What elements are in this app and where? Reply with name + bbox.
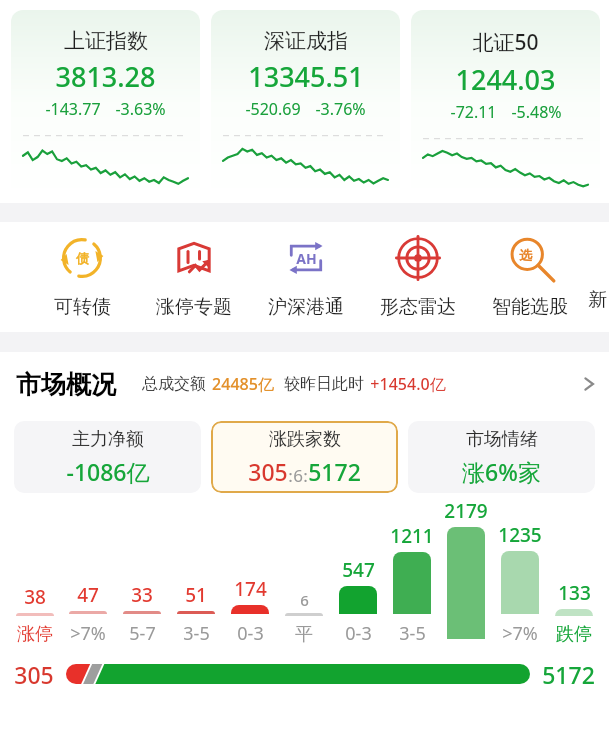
button[interactable]: 174	[223, 576, 277, 646]
staticText: 13345.51	[248, 58, 364, 95]
staticText: 债	[76, 250, 89, 266]
staticText: 跌停	[556, 623, 592, 646]
button[interactable]: 47	[61, 582, 115, 646]
staticText: -1086亿	[66, 456, 150, 487]
staticText: 北证50	[472, 28, 539, 57]
other: 可转债	[59, 235, 105, 281]
staticText: 33	[131, 582, 153, 608]
button[interactable]: 6	[277, 590, 331, 646]
staticText: 3813.28	[55, 58, 156, 95]
staticText: 47	[77, 582, 99, 608]
staticText: 市场情绪	[466, 428, 538, 451]
staticText: -3.63%	[115, 98, 166, 120]
staticText: -143.77	[45, 98, 101, 120]
other: 智能选股	[507, 235, 553, 281]
staticText: 547	[342, 557, 375, 583]
button[interactable]: 可转债	[26, 235, 138, 319]
button[interactable]: 上证指数	[11, 10, 200, 200]
other: 涨停专题	[171, 235, 217, 281]
button[interactable]: 51	[169, 582, 223, 646]
staticText: 5172	[308, 456, 361, 487]
staticText: :	[288, 464, 293, 487]
staticText: 可转债	[54, 295, 111, 319]
staticText: 涨跌家数	[269, 428, 341, 451]
staticText: 24485亿	[212, 373, 274, 395]
staticText: 形态雷达	[380, 295, 456, 319]
staticText: +1454.0亿	[370, 373, 446, 395]
staticText: 总成交额	[142, 374, 206, 394]
staticText: AH	[296, 249, 317, 268]
button[interactable]: 沪深港通	[250, 235, 362, 319]
staticText: 5-7	[129, 621, 156, 646]
button[interactable]: 市场情绪	[408, 421, 595, 493]
button[interactable]: 38	[8, 584, 61, 646]
staticText: 174	[234, 576, 267, 602]
staticText: 0-3	[345, 621, 372, 646]
button[interactable]: 主力净额	[14, 421, 201, 493]
staticText: 133	[558, 580, 591, 606]
staticText: 涨停	[17, 623, 53, 646]
button[interactable]: 1211	[385, 523, 439, 646]
staticText: 涨6%家	[462, 456, 541, 487]
button[interactable]: 547	[331, 557, 385, 646]
staticText: 平	[295, 623, 313, 646]
staticText: 3-5	[183, 621, 210, 646]
staticText: 市场概况	[16, 369, 116, 400]
staticText: 涨停专题	[156, 295, 232, 319]
staticText: 沪深港通	[268, 295, 344, 319]
button[interactable]: 深证成指	[211, 10, 400, 200]
staticText: 51	[185, 582, 207, 608]
staticText: -72.11	[450, 101, 497, 123]
button[interactable]: 涨停专题	[138, 235, 250, 319]
button[interactable]: 市场概况	[16, 352, 599, 416]
staticText: >7%	[70, 621, 106, 646]
staticText: -5.48%	[511, 101, 562, 123]
button[interactable]: 智能选股	[474, 235, 586, 319]
staticText: 6	[300, 590, 309, 610]
staticText: 2179	[444, 498, 488, 524]
staticText: 6	[293, 464, 303, 487]
button[interactable]: 形态雷达	[362, 235, 474, 319]
staticText: 1244.03	[455, 61, 556, 98]
other: 沪深港通	[283, 235, 329, 281]
staticText: 305	[14, 659, 54, 690]
button[interactable]: 33	[115, 582, 169, 646]
staticText: 选	[519, 247, 532, 263]
button[interactable]: 涨跌家数	[211, 421, 398, 493]
staticText: :	[303, 464, 308, 487]
staticText: 主力净额	[72, 428, 144, 451]
staticText: 上证指数	[64, 28, 148, 54]
staticText: 5172	[542, 659, 595, 690]
staticText: 38	[24, 584, 46, 610]
button[interactable]: 305	[14, 646, 595, 702]
button[interactable]: 北证50	[411, 10, 600, 200]
staticText: 0-3	[237, 621, 264, 646]
staticText: 305	[248, 456, 288, 487]
staticText: 3-5	[399, 621, 426, 646]
button[interactable]: 2179	[439, 498, 493, 646]
button[interactable]: 1235	[493, 522, 547, 646]
staticText: 新	[588, 288, 607, 312]
staticText: 1211	[390, 523, 434, 549]
staticText: >7%	[502, 621, 538, 646]
staticText: 1235	[498, 522, 542, 548]
button[interactable]: 133	[547, 580, 601, 646]
staticText: 智能选股	[492, 295, 568, 319]
staticText: -3.76%	[315, 98, 366, 120]
other: 更多	[579, 374, 599, 394]
staticText: -520.69	[245, 98, 301, 120]
staticText: 较昨日此时	[284, 374, 364, 394]
other: 形态雷达	[395, 235, 441, 281]
staticText: 深证成指	[264, 28, 348, 54]
